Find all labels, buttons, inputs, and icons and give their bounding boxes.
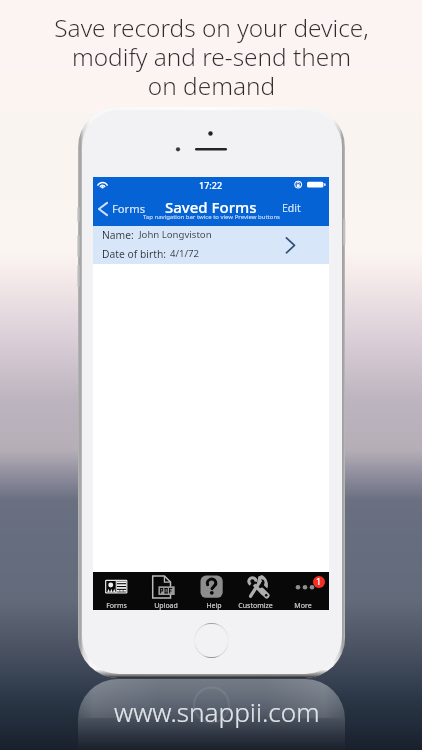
staticText: Help <box>206 601 222 611</box>
staticText: Forms <box>112 201 146 216</box>
staticText: John Longviston <box>139 228 212 241</box>
staticText: www.snappii.com <box>114 694 320 730</box>
button[interactable]: Forms <box>98 201 146 216</box>
button[interactable]: More <box>282 572 329 610</box>
button[interactable]: Upload <box>141 572 188 610</box>
staticText: Saved Forms <box>165 197 257 217</box>
button[interactable]: Forms <box>93 572 141 610</box>
staticText: Upload <box>154 601 178 611</box>
staticText: Tap navigation bar twice to view Preview… <box>143 213 280 221</box>
button[interactable]: Name: <box>93 226 329 264</box>
button[interactable]: Help <box>188 572 235 610</box>
staticText: 4/1/72 <box>170 247 200 260</box>
staticText: 1 <box>316 576 322 587</box>
button[interactable]: Customize <box>235 572 282 610</box>
staticText: 17:22 <box>199 179 223 191</box>
staticText: Save records on your device, modify and … <box>54 11 369 102</box>
staticText: Date of birth: <box>102 247 167 261</box>
staticText: Forms <box>106 601 127 611</box>
staticText: Customize <box>238 601 273 611</box>
staticText: Edit <box>282 201 301 215</box>
staticText: More <box>294 601 312 611</box>
staticText: Name: <box>102 228 134 242</box>
button[interactable]: Edit <box>282 201 301 215</box>
